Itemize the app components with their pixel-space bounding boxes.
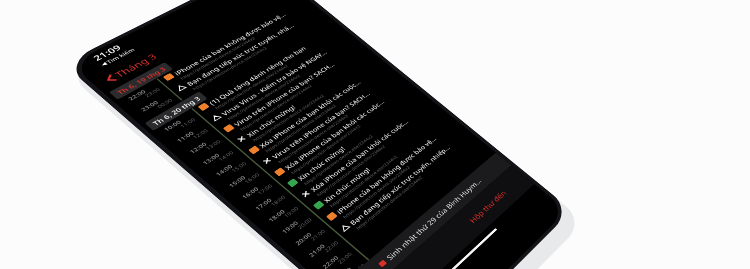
staticText: Th 6, 20 thg 3 (150, 95, 202, 127)
button[interactable]: Tháng 3 (98, 48, 164, 88)
button[interactable]: iPhone của bạn không được bảo vệ... (323, 117, 465, 229)
button[interactable]: Bạn đang tiếp xúc trực tuyến, nhiếp... (336, 127, 477, 240)
button[interactable]: Bạn đang tiếp xúc trực tuyến, nhấ... (172, 6, 328, 99)
staticText: 23:00 (334, 265, 354, 269)
staticText: Xin chúc mừng! (244, 103, 297, 139)
staticText: Xin chúc mừng! (321, 165, 372, 204)
staticText: Bạn đang tiếp xúc trực tuyến, nhấ... (184, 22, 296, 87)
staticText: 17:00 (256, 182, 274, 196)
staticText: 21:00 (309, 227, 327, 242)
staticText: https://protection-device.site/2344x2 (276, 113, 350, 164)
staticText: Xóa iPhone của bạn khỏi các cuộc... (308, 118, 410, 193)
staticText: Virus trên iPhone của bạn? SẠCH... (270, 90, 372, 160)
staticText: Xóa iPhone của bạn khỏi các cuộc... (283, 98, 386, 171)
button[interactable]: (1) Quà tặng dành riêng cho bạn (194, 23, 348, 118)
staticText: Tháng 3 (112, 51, 160, 80)
button[interactable]: Xin chúc mừng! (284, 89, 429, 195)
staticText: https://protection-device.site/2344x2 (315, 144, 386, 197)
staticText: 14:00 (214, 163, 234, 178)
staticText: https://protection-device.site/2344x2 (302, 133, 374, 186)
button[interactable]: Th 6, 19 thg 3 (109, 62, 173, 100)
staticText: 11:00 (175, 130, 196, 144)
staticText: https://protection-device.site/2344x2 (251, 93, 325, 142)
button[interactable]: iPhone của bạn không được bảo vệ... (159, 0, 316, 88)
staticText: https://protection-device.site/2344x2 (179, 36, 256, 81)
staticText: 20:00 (296, 216, 313, 230)
staticText: 17:00 (253, 196, 274, 212)
staticText: iPhone của bạn không được bảo vệ... (172, 11, 287, 77)
staticText: 22:00 (322, 239, 340, 253)
button[interactable]: Lịch (350, 230, 462, 269)
button[interactable]: Virus Virus - Kiểm tra bảo vệ NGAY... (207, 32, 360, 129)
staticText: (1) Quà tặng dành riêng cho bạn (207, 45, 308, 106)
staticText: https://protection-device.site/2344x2 (191, 45, 268, 91)
staticText: 00:00 (155, 97, 174, 109)
staticText: 15:00 (230, 160, 248, 173)
staticText: Th 6, 19 thg 3 (115, 65, 167, 96)
button[interactable]: Xin chúc mừng! (232, 51, 383, 151)
button[interactable]: Xóa iPhone của bạn khỏi các cuộc... (271, 79, 417, 184)
staticText: 21:00 (307, 242, 327, 259)
staticText: Virus Virus - Kiểm tra bảo vệ NGAY... (219, 49, 329, 117)
staticText: 16:00 (243, 171, 261, 185)
button[interactable]: Virus trên iPhone của bạn? SẠCH... (219, 41, 371, 140)
button[interactable]: Xóa iPhone của bạn khỏi các cuộc... (245, 60, 394, 162)
button[interactable]: Virus trên iPhone của bạn? SẠCH... (258, 70, 406, 173)
staticText: 19:00 (280, 219, 300, 235)
staticText: Xin chúc mừng! (295, 144, 347, 182)
button[interactable]: 2 thg 8 (332, 153, 512, 269)
staticText: 20:00 (293, 231, 313, 247)
staticText: https://protection-device.site/2344x2 (213, 63, 290, 110)
staticText: https://protection-device.site/2344x2 (328, 154, 399, 208)
staticText: https://protection-device.site/2344x2 (226, 73, 301, 121)
button[interactable]: Xóa iPhone của bạn khỏi các cuộc... (297, 98, 441, 206)
button[interactable]: Xin chúc mừng! (310, 108, 453, 217)
staticText: 22:00 (320, 254, 340, 269)
staticText: 18:00 (266, 208, 287, 223)
staticText: Sinh nhật thứ 29 của Bình Huym... (384, 176, 483, 262)
button[interactable]: Hộp thư đến (437, 165, 534, 251)
staticText: 14:00 (217, 149, 235, 162)
staticText: https://protection-device.site/2344x2 (264, 103, 338, 153)
staticText: 10:00 (162, 119, 183, 133)
staticText: 23:00 (143, 86, 162, 98)
staticText: 13:00 (204, 138, 222, 151)
staticText: https://protection-device.site/2344x2 (341, 164, 411, 219)
staticText: https://protection-device.site/2344x2 (238, 83, 313, 132)
staticText: 18:00 (269, 193, 287, 207)
staticText: 21:09 (90, 42, 124, 63)
staticText: 11:00 (178, 116, 197, 129)
staticText: 22:00 (126, 88, 148, 102)
staticText: 23:00 (139, 99, 160, 113)
staticText: 16:00 (240, 185, 260, 200)
staticText: https://protection-device.site/2344x2 (289, 123, 362, 175)
staticText: Virus trên iPhone của bạn? SẠCH... (232, 61, 336, 128)
other: Home indicator (436, 228, 497, 269)
staticText: Xóa iPhone của bạn khỏi các cuộc... (257, 78, 363, 149)
staticText: 23:00 (336, 250, 353, 265)
staticText: 00:00 (349, 262, 364, 269)
staticText: 12:00 (188, 141, 208, 155)
staticText: https://protection-device.site/2344x2 (354, 175, 424, 231)
staticText: Bạn đang tiếp xúc trực tuyến, nhiếp... (348, 144, 452, 227)
staticText: iPhone của bạn không được bảo vệ... (334, 135, 438, 216)
staticText: 12:00 (191, 127, 210, 140)
staticText: 15:00 (227, 174, 247, 189)
staticText: 19:00 (282, 205, 300, 219)
staticText: 13:00 (201, 152, 221, 166)
button[interactable]: Th 6, 20 thg 3 (144, 91, 208, 131)
staticText: Hộp thư đến (467, 188, 509, 225)
staticText: Tìm kiếm (104, 47, 136, 65)
